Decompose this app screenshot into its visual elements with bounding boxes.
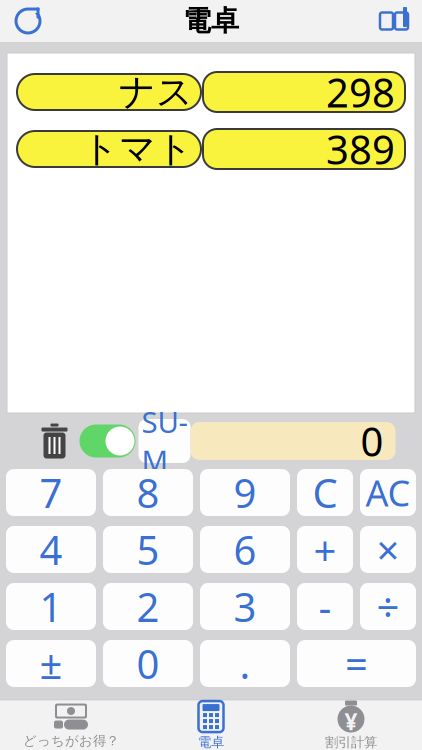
button[interactable]: = — [297, 640, 416, 687]
button[interactable]: ¥ — [281, 700, 421, 750]
staticText: 電卓 — [183, 4, 239, 38]
staticText: . — [239, 637, 250, 690]
button[interactable]: SUM — [138, 419, 190, 463]
staticText: どっちがお得？ — [23, 733, 119, 749]
button[interactable]: ナス — [17, 74, 201, 110]
button[interactable]: + — [297, 526, 353, 573]
button[interactable]: Delete — [32, 419, 76, 463]
button[interactable]: Sum mode — [76, 419, 138, 463]
staticText: 0 — [136, 637, 159, 690]
staticText: 298 — [326, 65, 395, 118]
button[interactable]: Notes — [372, 0, 416, 43]
staticText: 割引計算 — [325, 734, 377, 750]
staticText: 6 — [233, 523, 256, 576]
staticText: AC — [365, 469, 410, 516]
staticText: - — [318, 580, 331, 633]
button[interactable]: 1 — [6, 583, 96, 630]
staticText: 0 — [360, 414, 383, 467]
button[interactable]: 0 — [103, 640, 193, 687]
button[interactable]: 2 — [103, 583, 193, 630]
staticText: 8 — [136, 466, 159, 519]
button[interactable]: C — [297, 469, 353, 516]
button[interactable]: 4 — [6, 526, 96, 573]
staticText: 9 — [233, 466, 256, 519]
button[interactable]: . — [200, 640, 290, 687]
staticText: + — [313, 523, 336, 576]
button[interactable]: 5 — [103, 526, 193, 573]
staticText: ¥ — [344, 706, 357, 737]
button[interactable]: 3 — [200, 583, 290, 630]
button[interactable]: AC — [360, 469, 416, 516]
staticText: SUM — [141, 402, 187, 480]
button[interactable]: 389 — [203, 129, 405, 169]
button[interactable]: 6 — [200, 526, 290, 573]
staticText: ÷ — [376, 580, 399, 633]
staticText: C — [312, 466, 337, 519]
button[interactable]: ÷ — [360, 583, 416, 630]
button[interactable]: Reload — [6, 0, 50, 43]
staticText: ナス — [119, 70, 193, 114]
button[interactable]: 7 — [6, 469, 96, 516]
button[interactable]: 0 — [190, 422, 395, 460]
staticText: トマト — [82, 127, 193, 171]
button[interactable]: 298 — [203, 72, 405, 112]
staticText: × — [376, 523, 399, 576]
staticText: ± — [39, 637, 62, 690]
staticText: 5 — [136, 523, 159, 576]
staticText: 1 — [39, 580, 62, 633]
staticText: 3 — [233, 580, 256, 633]
button[interactable]: 8 — [103, 469, 193, 516]
button[interactable]: トマト — [17, 131, 201, 167]
button[interactable]: 9 — [200, 469, 290, 516]
button[interactable]: どっちがお得？ — [1, 700, 141, 750]
button[interactable]: 電卓 — [141, 700, 281, 750]
staticText: 電卓 — [198, 734, 224, 750]
staticText: = — [345, 637, 368, 690]
button[interactable]: - — [297, 583, 353, 630]
staticText: 2 — [136, 580, 159, 633]
button[interactable]: × — [360, 526, 416, 573]
staticText: 7 — [39, 466, 62, 519]
staticText: 389 — [326, 122, 395, 175]
button[interactable]: ± — [6, 640, 96, 687]
staticText: 4 — [39, 523, 62, 576]
